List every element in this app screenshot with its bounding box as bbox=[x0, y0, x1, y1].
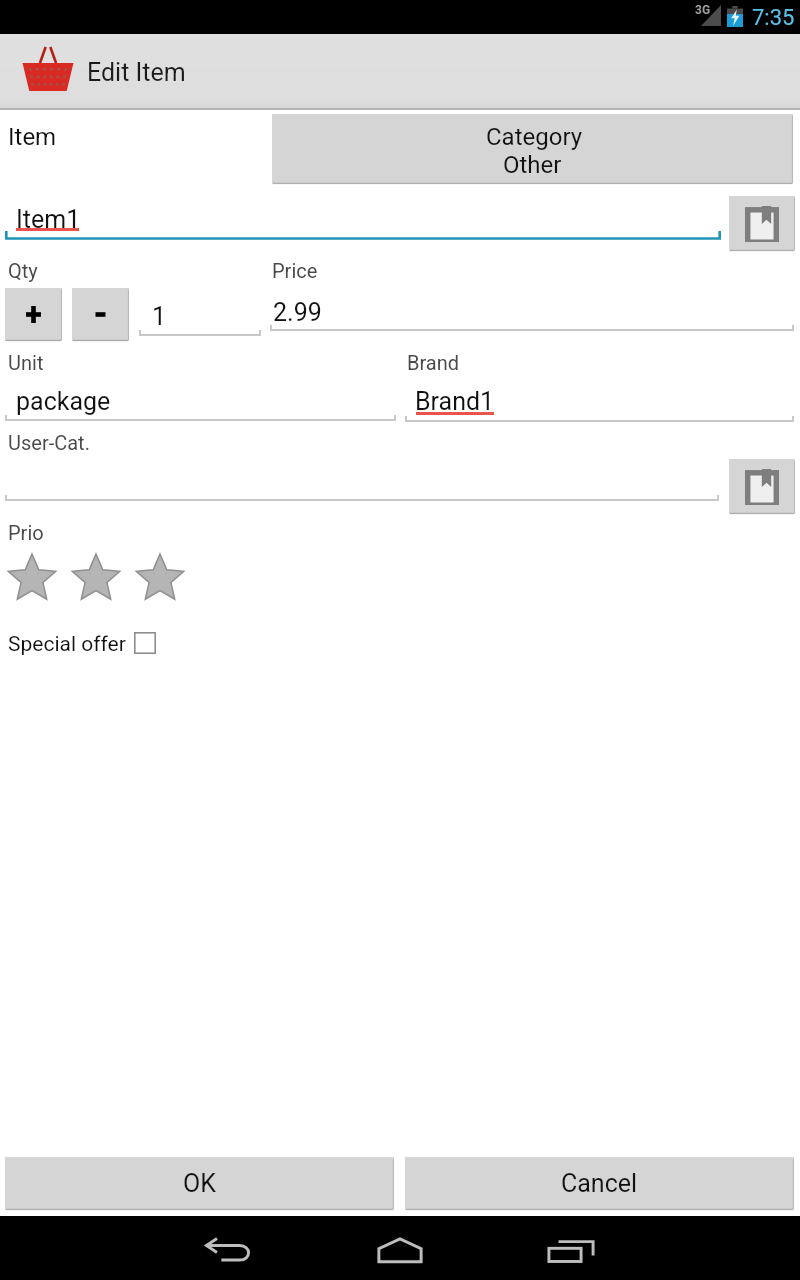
button[interactable]: Set priority to 3 bbox=[135, 554, 199, 604]
staticText: Price bbox=[272, 259, 318, 282]
staticText: OK bbox=[183, 1169, 216, 1198]
staticText: 3G bbox=[695, 3, 711, 17]
staticText: Category bbox=[486, 123, 583, 151]
staticText: 7:35 bbox=[752, 5, 795, 31]
staticText: Brand1 bbox=[415, 387, 495, 416]
button[interactable]: Cancel bbox=[405, 1157, 794, 1210]
staticText: Special offer bbox=[8, 632, 126, 657]
button[interactable]: Set priority to 1 bbox=[7, 554, 71, 604]
staticText: package bbox=[16, 387, 111, 416]
button[interactable]: Pick user category bbox=[729, 459, 795, 514]
button[interactable]: Pick item from list bbox=[729, 196, 795, 251]
staticText: Cancel bbox=[561, 1169, 638, 1198]
button[interactable]: Category bbox=[272, 114, 793, 184]
staticText: Other bbox=[503, 151, 562, 179]
button[interactable]: Back bbox=[144, 1218, 314, 1280]
staticText: 2.99 bbox=[273, 298, 322, 327]
staticText: Item bbox=[8, 123, 57, 151]
staticText: Brand bbox=[407, 351, 460, 374]
button[interactable]: Home bbox=[314, 1218, 485, 1280]
staticText: Item1 bbox=[16, 205, 81, 234]
staticText: Unit bbox=[8, 351, 44, 374]
button[interactable]: Special offer checkbox bbox=[134, 632, 156, 654]
button[interactable]: Increase quantity bbox=[5, 288, 62, 341]
button[interactable]: OK bbox=[5, 1157, 394, 1210]
button[interactable]: Set priority to 2 bbox=[71, 554, 135, 604]
button[interactable]: Decrease quantity bbox=[72, 288, 129, 341]
staticText: Qty bbox=[8, 259, 38, 282]
staticText: User-Cat. bbox=[8, 431, 90, 454]
staticText: 1 bbox=[152, 302, 167, 331]
staticText: Edit Item bbox=[87, 58, 186, 87]
button[interactable]: Recent apps bbox=[485, 1218, 656, 1280]
staticText: Prio bbox=[8, 521, 44, 544]
